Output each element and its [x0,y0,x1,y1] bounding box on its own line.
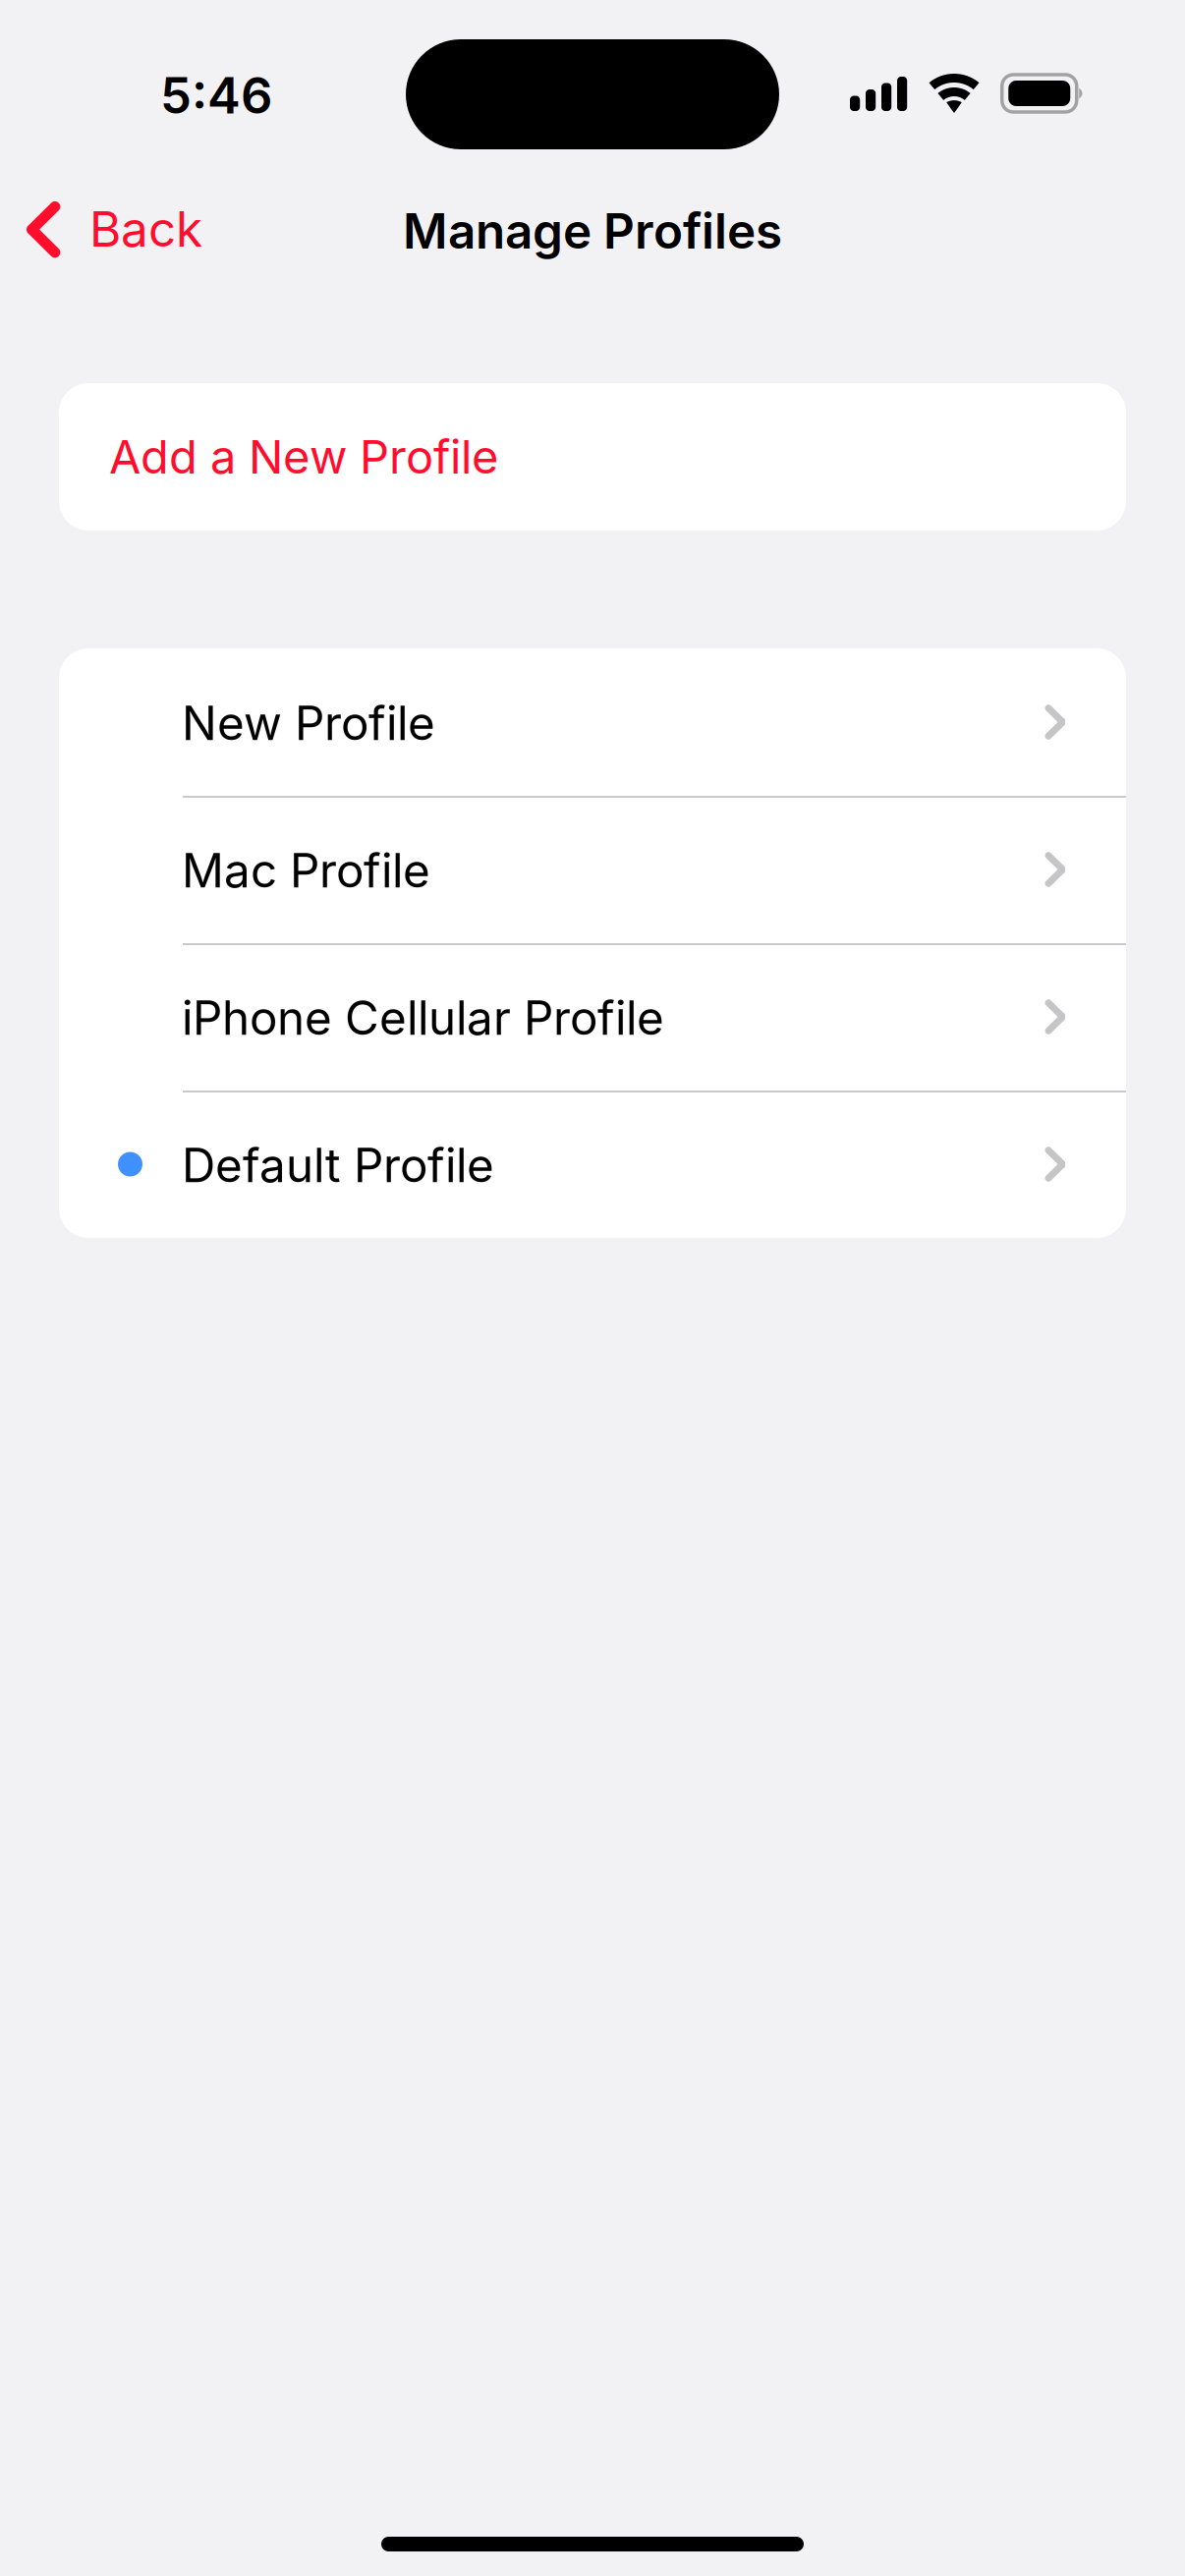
button[interactable]: Default Profile [59,1091,1126,1238]
button[interactable]: New Profile [59,648,1126,796]
button[interactable]: Back [0,155,226,279]
button[interactable]: Add a New Profile [59,383,1126,531]
staticText: Default Profile [182,1137,494,1193]
staticText: Mac Profile [182,842,430,899]
button[interactable]: iPhone Cellular Profile [59,943,1126,1091]
staticText: iPhone Cellular Profile [182,990,664,1046]
staticText: Manage Profiles [403,202,782,260]
staticText: Back [89,200,202,258]
staticText: New Profile [182,695,435,751]
staticText: 5:46 [160,65,272,125]
button[interactable]: Mac Profile [59,796,1126,943]
staticText: Add a New Profile [109,429,498,485]
